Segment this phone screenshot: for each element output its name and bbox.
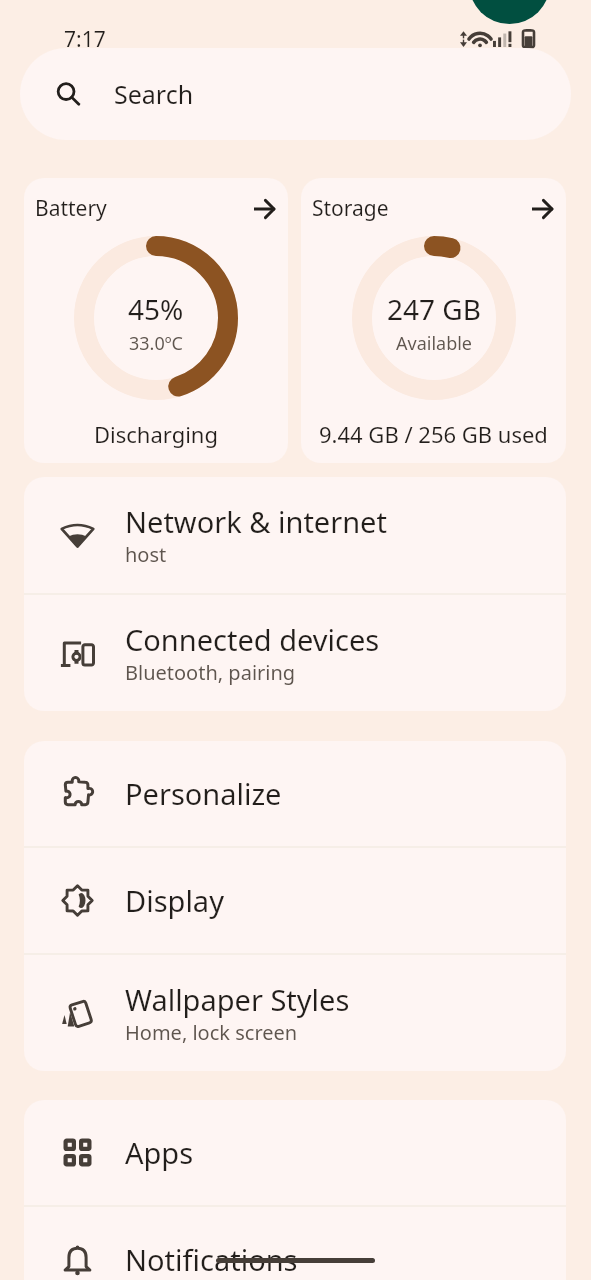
staticText: Home, lock screen <box>125 1019 298 1046</box>
button[interactable]: Network & internet <box>24 477 566 593</box>
staticText: 33.0ºC <box>129 331 183 356</box>
staticText: Display <box>125 881 224 920</box>
staticText: Search <box>114 77 194 111</box>
other: Battery <box>523 29 534 47</box>
button[interactable]: Wallpaper Styles <box>24 955 566 1071</box>
staticText: Network & internet <box>125 502 387 541</box>
staticText: Storage <box>312 194 389 223</box>
staticText: Available <box>396 331 472 356</box>
button[interactable]: Connected devices <box>24 595 566 711</box>
staticText: Connected devices <box>125 620 380 659</box>
button[interactable]: Apps <box>24 1100 566 1205</box>
button[interactable]: Search <box>20 48 571 140</box>
button[interactable]: Display <box>24 848 566 953</box>
staticText: Battery <box>35 194 107 223</box>
other: Data transfer <box>460 31 467 47</box>
staticText: Discharging <box>94 419 218 449</box>
staticText: Wallpaper Styles <box>125 980 350 1019</box>
staticText: Apps <box>125 1133 194 1172</box>
button[interactable]: Storage <box>301 178 566 463</box>
staticText: Notifications <box>125 1240 298 1279</box>
staticText: host <box>125 541 167 568</box>
other: Mobile signal <box>493 31 512 47</box>
staticText: Personalize <box>125 774 282 813</box>
staticText: 247 GB <box>387 290 481 328</box>
staticText: 7:17 <box>64 25 106 48</box>
staticText: 9.44 GB / 256 GB used <box>319 419 548 449</box>
button[interactable]: Battery <box>24 178 288 463</box>
button[interactable]: Personalize <box>24 741 566 846</box>
other: Wi-Fi <box>469 32 491 47</box>
other: Storage <box>531 198 553 220</box>
staticText: Bluetooth, pairing <box>125 659 296 686</box>
staticText: 45% <box>128 290 184 328</box>
button[interactable]: Notifications <box>24 1207 566 1280</box>
other: Battery <box>253 198 275 220</box>
